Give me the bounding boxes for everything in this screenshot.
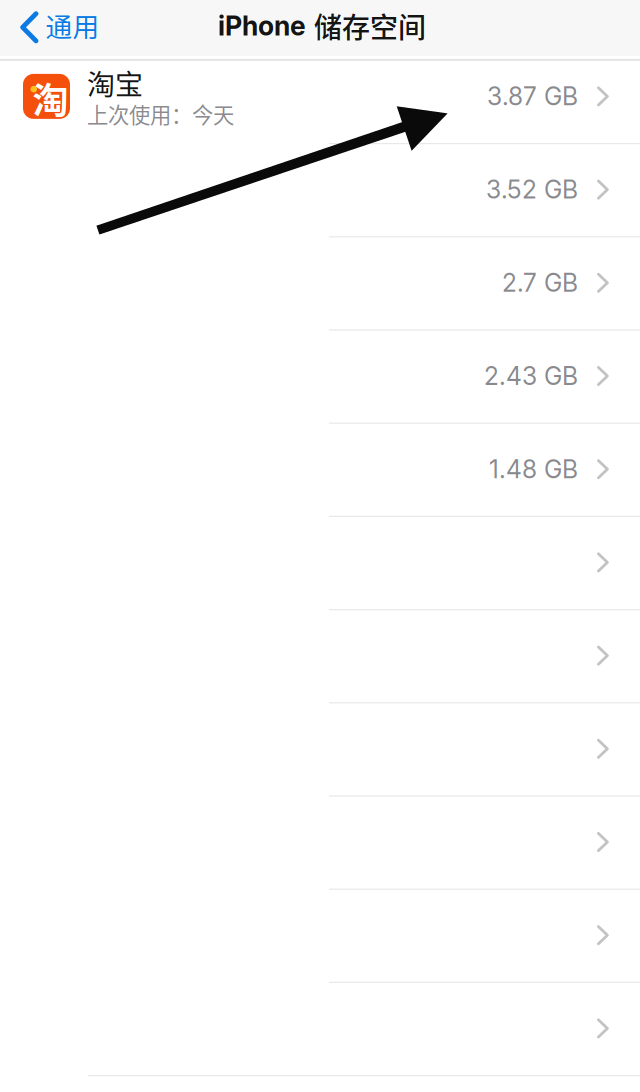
- button[interactable]: App using 2.7 GB: [0, 236, 640, 329]
- staticText: 通用: [45, 6, 99, 45]
- staticText: 3.87 GB: [487, 81, 578, 111]
- button[interactable]: 通用: [0, 0, 111, 56]
- button[interactable]: App using 2.43 GB: [0, 329, 640, 423]
- staticText: 2.43 GB: [484, 361, 578, 391]
- staticText: 储存空间: [314, 5, 426, 46]
- staticText: 淘: [32, 72, 68, 124]
- staticText: 3.52 GB: [486, 175, 578, 204]
- staticText: 1.48 GB: [489, 454, 578, 484]
- button[interactable]: App using 3.52 GB: [0, 143, 640, 236]
- staticText: 2.7 GB: [502, 268, 578, 298]
- staticText: 上次使用：今天: [87, 98, 234, 129]
- staticText: 淘宝: [87, 63, 143, 103]
- button[interactable]: App using 1.48 GB: [0, 423, 640, 516]
- button[interactable]: 淘: [0, 50, 640, 143]
- staticText: iPhone: [218, 10, 306, 42]
